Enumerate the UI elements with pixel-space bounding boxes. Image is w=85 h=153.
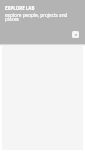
button[interactable]: Open menu (72, 31, 79, 38)
staticText: EXPLORE LAB (5, 5, 35, 11)
staticText: explore people, projects and places (5, 12, 72, 22)
